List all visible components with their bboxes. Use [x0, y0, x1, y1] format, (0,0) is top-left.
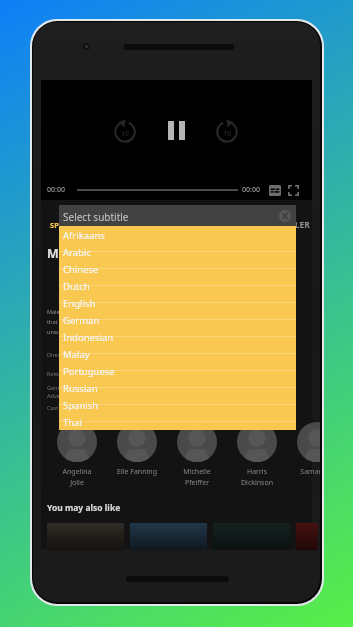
button[interactable]: Indonesian: [59, 328, 296, 345]
staticText: Michelle Pfeiffer: [177, 467, 217, 487]
staticText: Maleficent is a 2014 American dark fanta…: [47, 308, 197, 335]
staticText: Malay: [63, 348, 90, 361]
button[interactable]: Chinese: [59, 260, 296, 277]
staticText: Afrikaans: [63, 229, 105, 242]
staticText: Angelina Jolie, Elle Fanning, Michelle P…: [87, 404, 158, 420]
button[interactable]: Spanish: [59, 396, 296, 413]
staticText: Maleficent: [47, 245, 114, 262]
button[interactable]: [130, 523, 207, 550]
staticText: Harris Dickinson: [237, 467, 277, 487]
button[interactable]: Pause: [163, 117, 189, 143]
staticText: 00:00: [242, 185, 260, 195]
staticText: Samantha: [297, 467, 320, 477]
button[interactable]: Malay: [59, 345, 296, 362]
staticText: TRAILER: [275, 219, 310, 231]
staticText: 10: [223, 129, 232, 139]
button[interactable]: Angelina Jolie: [57, 422, 97, 490]
button[interactable]: Elle Fanning: [117, 422, 157, 490]
staticText: Russian: [63, 382, 98, 395]
button[interactable]: Close: [279, 210, 291, 222]
staticText: Portuguese: [63, 365, 115, 378]
staticText: SPIDER-MAN: [50, 220, 98, 230]
button[interactable]: Thai: [59, 413, 296, 430]
staticText: Release date: [47, 370, 87, 377]
button[interactable]: Fullscreen: [288, 185, 299, 196]
staticText: Cast: [47, 404, 87, 411]
button[interactable]: Russian: [59, 379, 296, 396]
button[interactable]: Replay 10 seconds: [111, 117, 139, 145]
button[interactable]: Harris Dickinson: [237, 422, 277, 490]
button[interactable]: Arabic: [59, 243, 296, 260]
staticText: 10: [121, 129, 130, 139]
button[interactable]: English: [59, 294, 296, 311]
button[interactable]: Samantha: [297, 422, 320, 490]
staticText: Angelina Jolie: [57, 467, 97, 487]
staticText: Genre Adventure: [47, 384, 87, 400]
staticText: Spanish: [63, 399, 99, 412]
button[interactable]: Dutch: [59, 277, 296, 294]
button[interactable]: Subtitles: [269, 185, 281, 196]
staticText: 00:00: [47, 185, 65, 195]
staticText: May 30, 2014: [87, 370, 122, 377]
staticText: Arabic: [63, 246, 91, 259]
button[interactable]: Portuguese: [59, 362, 296, 379]
staticText: Elle Fanning: [117, 467, 157, 477]
staticText: Chinese: [63, 263, 99, 276]
button[interactable]: [296, 523, 318, 550]
button[interactable]: [213, 523, 290, 550]
staticText: Thai: [63, 416, 82, 429]
button[interactable]: German: [59, 311, 296, 328]
button[interactable]: Afrikaans: [59, 226, 296, 243]
staticText: Indonesian: [63, 331, 114, 344]
button[interactable]: [47, 523, 124, 550]
button[interactable]: Michelle Pfeiffer: [177, 422, 217, 490]
staticText: German: [63, 314, 100, 327]
staticText: Director: [47, 351, 87, 358]
staticText: You may also like: [47, 502, 121, 514]
staticText: English: [63, 297, 96, 310]
staticText: Select subtitle: [63, 210, 129, 224]
staticText: Fantasy, Family, Action: [87, 384, 128, 400]
button[interactable]: Forward 10 seconds: [213, 117, 241, 145]
staticText: Dutch: [63, 280, 90, 293]
staticText: Robert Stromberg: [87, 351, 134, 358]
